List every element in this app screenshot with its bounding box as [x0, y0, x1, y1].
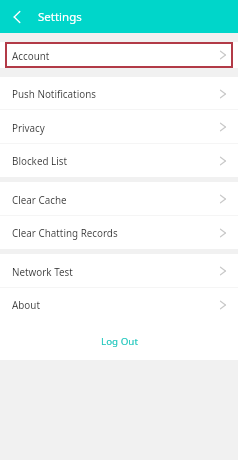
staticText: Blocked List [12, 154, 68, 167]
button[interactable]: Account [0, 42, 238, 68]
staticText: Privacy [12, 121, 45, 134]
staticText: Push Notifications [12, 87, 96, 100]
staticText: Log Out [101, 335, 138, 348]
button[interactable]: Privacy [0, 110, 238, 144]
staticText: Network Test [12, 265, 73, 278]
button[interactable]: Network Test [0, 254, 238, 288]
button[interactable]: Clear Cache [0, 182, 238, 216]
button[interactable]: About [0, 288, 238, 321]
button[interactable]: Clear Chatting Records [0, 216, 238, 249]
button[interactable]: Back [0, 0, 33, 33]
staticText: Settings [38, 9, 82, 25]
staticText: Account [12, 49, 50, 62]
staticText: About [12, 298, 40, 311]
staticText: Clear Cache [12, 193, 67, 206]
button[interactable]: Push Notifications [0, 77, 238, 110]
button[interactable]: Log Out [0, 321, 238, 360]
staticText: Clear Chatting Records [12, 226, 118, 239]
button[interactable]: Blocked List [0, 144, 238, 177]
